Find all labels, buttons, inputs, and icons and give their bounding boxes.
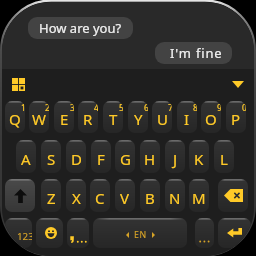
button[interactable]: R [78,101,98,133]
button[interactable]: W [29,101,49,133]
staticText: 123 [17,230,32,243]
staticText: 2 [45,102,49,114]
staticText: Y [134,109,143,129]
button[interactable]: D [66,140,86,173]
staticText: J [173,149,178,169]
button[interactable]: P [226,101,246,133]
staticText: 4 [94,102,98,114]
staticText: D [71,149,82,169]
staticText: K [194,149,204,169]
button[interactable]: T [103,101,123,133]
button[interactable]: Z [41,179,61,212]
button[interactable]: Backspace [218,179,248,212]
staticText: How are you? [39,19,122,37]
staticText: H [144,149,156,169]
button[interactable]: U [152,101,172,133]
staticText: 8 [193,102,197,114]
button[interactable]: A [16,140,36,173]
staticText: 6 [144,102,148,114]
button[interactable]: C [90,179,110,212]
button[interactable]: Comma [67,218,89,248]
button[interactable]: Numbers [5,218,32,248]
staticText: W [32,109,46,129]
button[interactable]: L [214,140,234,173]
staticText: C [95,188,105,208]
staticText: L [220,149,228,169]
staticText: 5 [119,102,123,114]
staticText: EN [134,229,147,241]
staticText: 3 [70,102,74,114]
button[interactable]: Shift [5,179,35,212]
staticText: R [83,109,93,129]
button[interactable]: K [189,140,209,173]
staticText: T [109,109,118,129]
button[interactable]: Q [5,101,25,133]
staticText: F [97,149,105,169]
button[interactable]: Emoji [36,218,63,248]
button[interactable]: Enter [218,218,251,248]
staticText: X [72,188,81,208]
staticText: P [231,109,241,129]
button[interactable]: Space [93,218,187,248]
staticText: M [192,188,206,208]
button[interactable]: I [177,101,197,133]
staticText: N [169,188,181,208]
button[interactable]: How are you? [28,17,133,39]
button[interactable]: Themes [7,73,29,95]
button[interactable]: O [201,101,221,133]
button[interactable]: H [140,140,160,173]
staticText: A [21,149,31,169]
button[interactable]: Hide keyboard [228,75,248,93]
button[interactable]: I'm fine [155,42,232,64]
button[interactable]: J [165,140,185,173]
staticText: S [47,149,56,169]
staticText: B [145,188,155,208]
staticText: Q [9,109,21,129]
staticText: V [120,188,130,208]
staticText: Z [47,188,56,208]
staticText: 7 [168,102,172,114]
button[interactable]: N [165,179,185,212]
button[interactable]: V [115,179,135,212]
button[interactable]: X [66,179,86,212]
staticText: 9 [217,102,221,114]
button[interactable]: E [54,101,74,133]
staticText: 0 [242,102,246,114]
staticText: O [205,109,217,129]
staticText: E [60,109,69,129]
staticText: I [184,109,190,129]
staticText: G [120,149,131,169]
button[interactable]: S [41,140,61,173]
staticText: I'm fine [170,44,223,62]
button[interactable]: G [115,140,135,173]
staticText: 1 [21,102,25,114]
button[interactable]: M [189,179,209,212]
button[interactable]: Y [128,101,148,133]
button[interactable]: More options [195,218,214,248]
button[interactable]: B [140,179,160,212]
button[interactable]: F [91,140,111,173]
staticText: U [157,109,168,129]
